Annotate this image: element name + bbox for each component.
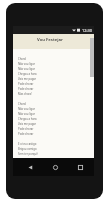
staticText: Pode chorar [18,82,34,86]
staticText: Sem ter porquê [18,152,38,156]
staticText: Pode chorar [18,87,34,91]
staticText: Não vou ligar [18,62,35,66]
staticText: Chegou a hora [18,72,37,76]
button[interactable]: Vou Festejar [13,34,94,49]
staticText: Não vou ligar [18,67,35,71]
button[interactable]: Back [24,161,36,173]
staticText: Vais me pagar [18,122,36,126]
button[interactable]: Recent apps [74,161,86,173]
staticText: Não vou ligar [18,112,35,116]
staticText: Pode chorar [18,132,34,136]
staticText: E o teu castigo [18,142,37,146]
staticText: 12:30 [82,28,92,33]
staticText: Brigou comigo [18,147,37,151]
staticText: Vais me pagar [18,77,36,81]
staticText: Pode chorar [18,127,34,131]
staticText: Mas chora! [18,92,32,96]
staticText: Vou Festejar [37,37,63,43]
staticText: Chora! [18,102,27,106]
staticText: Chegou a hora [18,117,37,121]
staticText: Não vou ligar [18,107,35,111]
button[interactable]: Home [49,161,61,173]
staticText: Chora! [18,57,27,61]
